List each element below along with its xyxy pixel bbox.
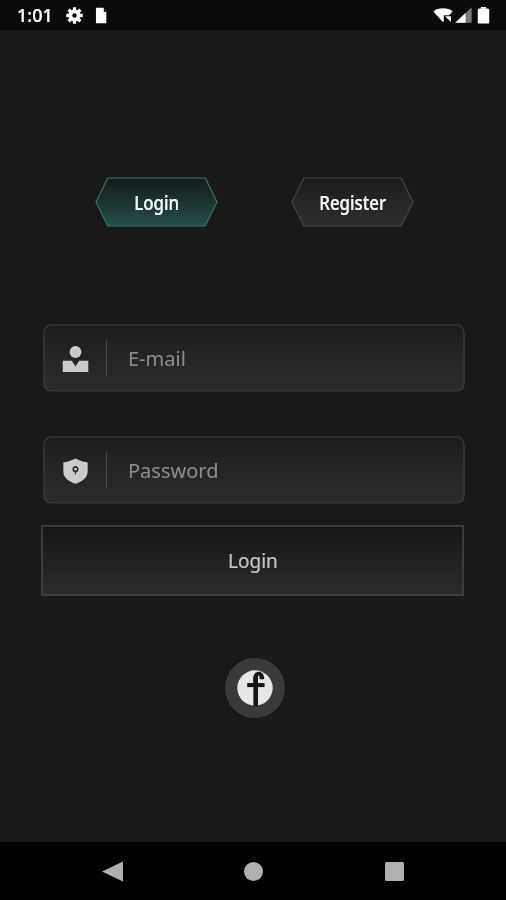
staticText: Register — [319, 189, 387, 216]
button[interactable]: Login — [42, 526, 463, 595]
button[interactable]: Login — [96, 178, 217, 226]
staticText: 1:01 — [17, 3, 53, 28]
button[interactable]: E-mail — [44, 325, 464, 391]
staticText: E-mail — [128, 345, 186, 372]
staticText: Login — [134, 189, 180, 216]
staticText: Password — [128, 457, 219, 484]
button[interactable]: Register — [292, 178, 413, 226]
button[interactable]: Home — [224, 842, 282, 900]
button[interactable]: Sign in with Facebook — [225, 658, 285, 718]
button[interactable]: Password — [44, 437, 464, 503]
staticText: Login — [228, 548, 278, 574]
button[interactable]: Recents — [365, 842, 423, 900]
button[interactable]: Back — [83, 842, 141, 900]
